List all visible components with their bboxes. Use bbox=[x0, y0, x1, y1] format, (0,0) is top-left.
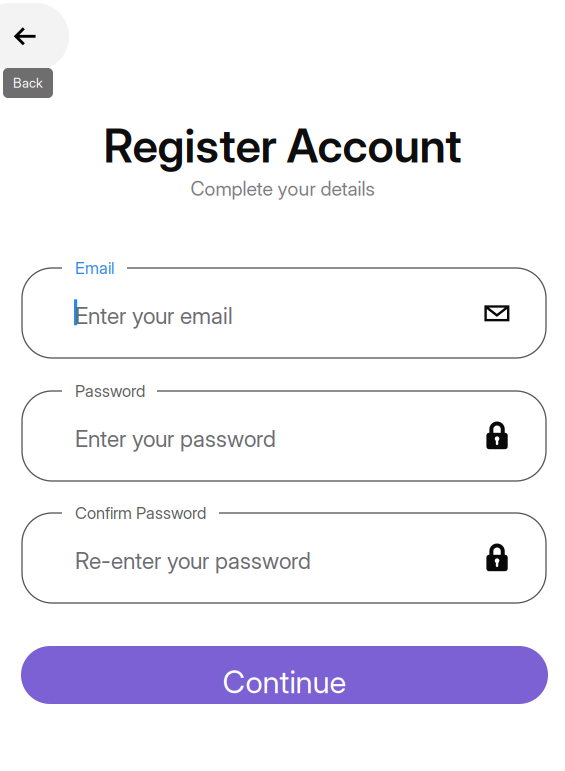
staticText: Back bbox=[13, 75, 43, 91]
staticText: Register Account bbox=[103, 118, 461, 174]
staticText: Enter your email bbox=[75, 302, 233, 329]
staticText: Continue bbox=[222, 663, 346, 701]
staticText: Re-enter your password bbox=[75, 547, 311, 574]
staticText: Complete your details bbox=[190, 177, 374, 201]
staticText: Confirm Password bbox=[75, 503, 206, 523]
staticText: Email bbox=[75, 258, 114, 278]
staticText: Password bbox=[75, 381, 145, 401]
button[interactable]: Continue bbox=[21, 646, 548, 704]
button[interactable]: Back bbox=[0, 3, 69, 70]
staticText: Enter your password bbox=[75, 425, 276, 452]
